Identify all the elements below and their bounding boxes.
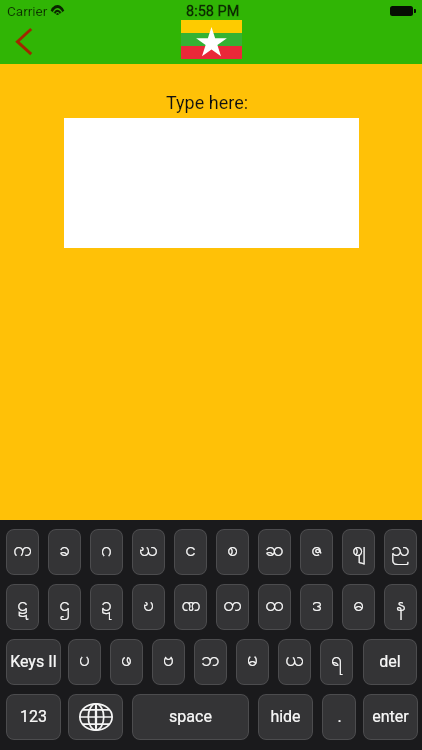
button[interactable]: ဋ: [6, 584, 39, 630]
staticText: ထ: [265, 592, 284, 620]
button[interactable]: ဍ: [90, 584, 123, 630]
staticText: del: [379, 652, 401, 671]
staticText: ဍ: [101, 592, 112, 620]
staticText: ဃ: [139, 537, 158, 565]
staticText: space: [169, 707, 212, 726]
staticText: ခ: [59, 537, 70, 565]
staticText: hide: [270, 707, 301, 726]
button[interactable]: enter: [363, 694, 418, 740]
staticText: ဏ: [181, 592, 201, 620]
staticText: ဎ: [143, 592, 154, 620]
button[interactable]: ဗ: [152, 639, 185, 685]
staticText: ဋ: [17, 592, 28, 620]
button[interactable]: ဏ: [174, 584, 207, 630]
staticText: Keys II: [10, 652, 57, 671]
button[interactable]: .: [322, 694, 356, 740]
staticText: Carrier: [7, 3, 48, 19]
button[interactable]: တ: [216, 584, 249, 630]
button[interactable]: ဓ: [342, 584, 375, 630]
button[interactable]: space: [132, 694, 249, 740]
staticText: ဂ: [101, 537, 112, 565]
button[interactable]: ည: [384, 529, 417, 575]
staticText: ယ: [285, 647, 304, 675]
staticText: က: [13, 537, 32, 565]
staticText: ပ: [79, 647, 90, 675]
button[interactable]: ဘ: [194, 639, 227, 685]
button[interactable]: 123: [6, 694, 61, 740]
button[interactable]: န: [384, 584, 417, 630]
button[interactable]: hide: [258, 694, 313, 740]
staticText: ဇ: [311, 537, 323, 565]
staticText: .: [337, 707, 342, 726]
button[interactable]: ဖ: [110, 639, 143, 685]
button[interactable]: Keys II: [6, 639, 61, 685]
staticText: င: [185, 537, 196, 565]
staticText: န: [396, 592, 406, 620]
button[interactable]: ယ: [278, 639, 311, 685]
button[interactable]: ဒ: [300, 584, 333, 630]
staticText: ရ: [331, 647, 342, 675]
button[interactable]: ဌ: [48, 584, 81, 630]
button[interactable]: ခ: [48, 529, 81, 575]
button[interactable]: del: [363, 639, 417, 685]
button[interactable]: က: [6, 529, 39, 575]
button[interactable]: စ: [216, 529, 249, 575]
button[interactable]: ထ: [258, 584, 291, 630]
button[interactable]: ရ: [320, 639, 353, 685]
staticText: တ: [223, 592, 242, 620]
staticText: ဒ: [312, 592, 322, 620]
staticText: ဈ: [352, 537, 366, 565]
button[interactable]: ဇ: [300, 529, 333, 575]
staticText: ဌ: [59, 592, 70, 620]
staticText: ဘ: [201, 647, 220, 675]
button[interactable]: မ: [236, 639, 269, 685]
staticText: မ: [247, 647, 258, 675]
button[interactable]: ဂ: [90, 529, 123, 575]
staticText: ဆ: [265, 537, 284, 565]
button[interactable]: ဆ: [258, 529, 291, 575]
staticText: ဖ: [121, 647, 132, 675]
button[interactable]: ဈ: [342, 529, 375, 575]
staticText: 8:58 PM: [186, 3, 240, 20]
staticText: Type here:: [166, 92, 249, 113]
button[interactable]: င: [174, 529, 207, 575]
button[interactable]: ဃ: [132, 529, 165, 575]
staticText: enter: [372, 707, 409, 726]
staticText: ဗ: [163, 647, 174, 675]
staticText: ဓ: [353, 592, 364, 620]
staticText: စ: [227, 537, 238, 565]
button[interactable]: ပ: [68, 639, 101, 685]
button[interactable]: ဎ: [132, 584, 165, 630]
button[interactable]: Back: [8, 22, 38, 56]
button[interactable]: Change keyboard language: [68, 694, 123, 740]
staticText: 123: [20, 707, 47, 726]
staticText: ည: [391, 537, 410, 565]
